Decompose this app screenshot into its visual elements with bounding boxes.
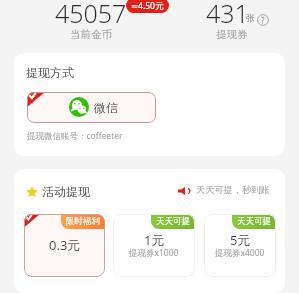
- staticText: 1元: [144, 231, 165, 249]
- staticText: 提现券x4000: [215, 247, 265, 259]
- staticText: 天天可提: [156, 216, 190, 227]
- staticText: 天天可提，秒到账: [196, 184, 270, 196]
- staticText: ?: [261, 15, 265, 26]
- staticText: 天天可提: [237, 216, 271, 227]
- button[interactable]: 提现券说明: [257, 14, 269, 26]
- staticText: ≈4.50元: [131, 0, 164, 12]
- button[interactable]: 0.3元: [24, 214, 105, 277]
- staticText: 5元: [230, 231, 251, 249]
- button[interactable]: 5元: [204, 214, 276, 277]
- staticText: 提现微信账号：coffeeter: [27, 130, 123, 142]
- staticText: 当前金币: [70, 28, 112, 41]
- button[interactable]: 微信: [27, 92, 156, 123]
- staticText: 0.3元: [49, 236, 81, 254]
- staticText: 45057: [55, 0, 127, 30]
- staticText: 活动提现: [42, 184, 90, 199]
- staticText: 限时福利: [66, 216, 100, 227]
- staticText: 431: [206, 0, 249, 30]
- staticText: 微信: [94, 100, 118, 115]
- staticText: 提现券: [216, 28, 248, 41]
- button[interactable]: 1元: [113, 214, 195, 277]
- staticText: 提现券x1000: [129, 247, 179, 259]
- staticText: 张: [246, 12, 255, 23]
- staticText: 提现方式: [26, 65, 74, 80]
